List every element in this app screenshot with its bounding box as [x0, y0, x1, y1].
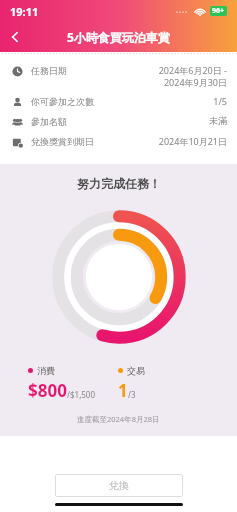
- staticText: 兌換獎賞到期日: [31, 136, 158, 147]
- staticText: 你可參加之次數: [31, 96, 213, 107]
- staticText: 未滿: [209, 115, 227, 126]
- staticText: 努力完成任務！: [77, 176, 161, 191]
- staticText: 5小時食買玩泊車賞: [67, 29, 170, 45]
- staticText: /3: [128, 389, 136, 400]
- staticText: 96+: [212, 6, 225, 16]
- staticText: 任務日期: [31, 65, 158, 76]
- button[interactable]: 任務日期: [0, 61, 237, 92]
- staticText: 參加名額: [31, 116, 209, 127]
- staticText: 消費: [37, 365, 55, 376]
- button[interactable]: 兌換: [55, 474, 183, 497]
- staticText: 1: [118, 379, 128, 402]
- staticText: 19:11: [10, 4, 39, 19]
- button[interactable]: 兌換獎賞到期日: [0, 132, 237, 152]
- staticText: 1/5: [213, 95, 227, 107]
- button[interactable]: Back: [0, 22, 30, 52]
- staticText: $800: [28, 379, 67, 402]
- staticText: 交易: [127, 365, 145, 376]
- staticText: 進度截至2024年8月28日: [77, 414, 160, 424]
- staticText: /$1,500: [67, 389, 95, 400]
- staticText: 兌換: [109, 479, 129, 492]
- button[interactable]: 參加名額: [0, 112, 237, 132]
- button[interactable]: 你可參加之次數: [0, 92, 237, 112]
- staticText: 2024年6月20日 - 2024年9月30日: [158, 64, 227, 89]
- staticText: 2024年10月21日: [158, 135, 227, 147]
